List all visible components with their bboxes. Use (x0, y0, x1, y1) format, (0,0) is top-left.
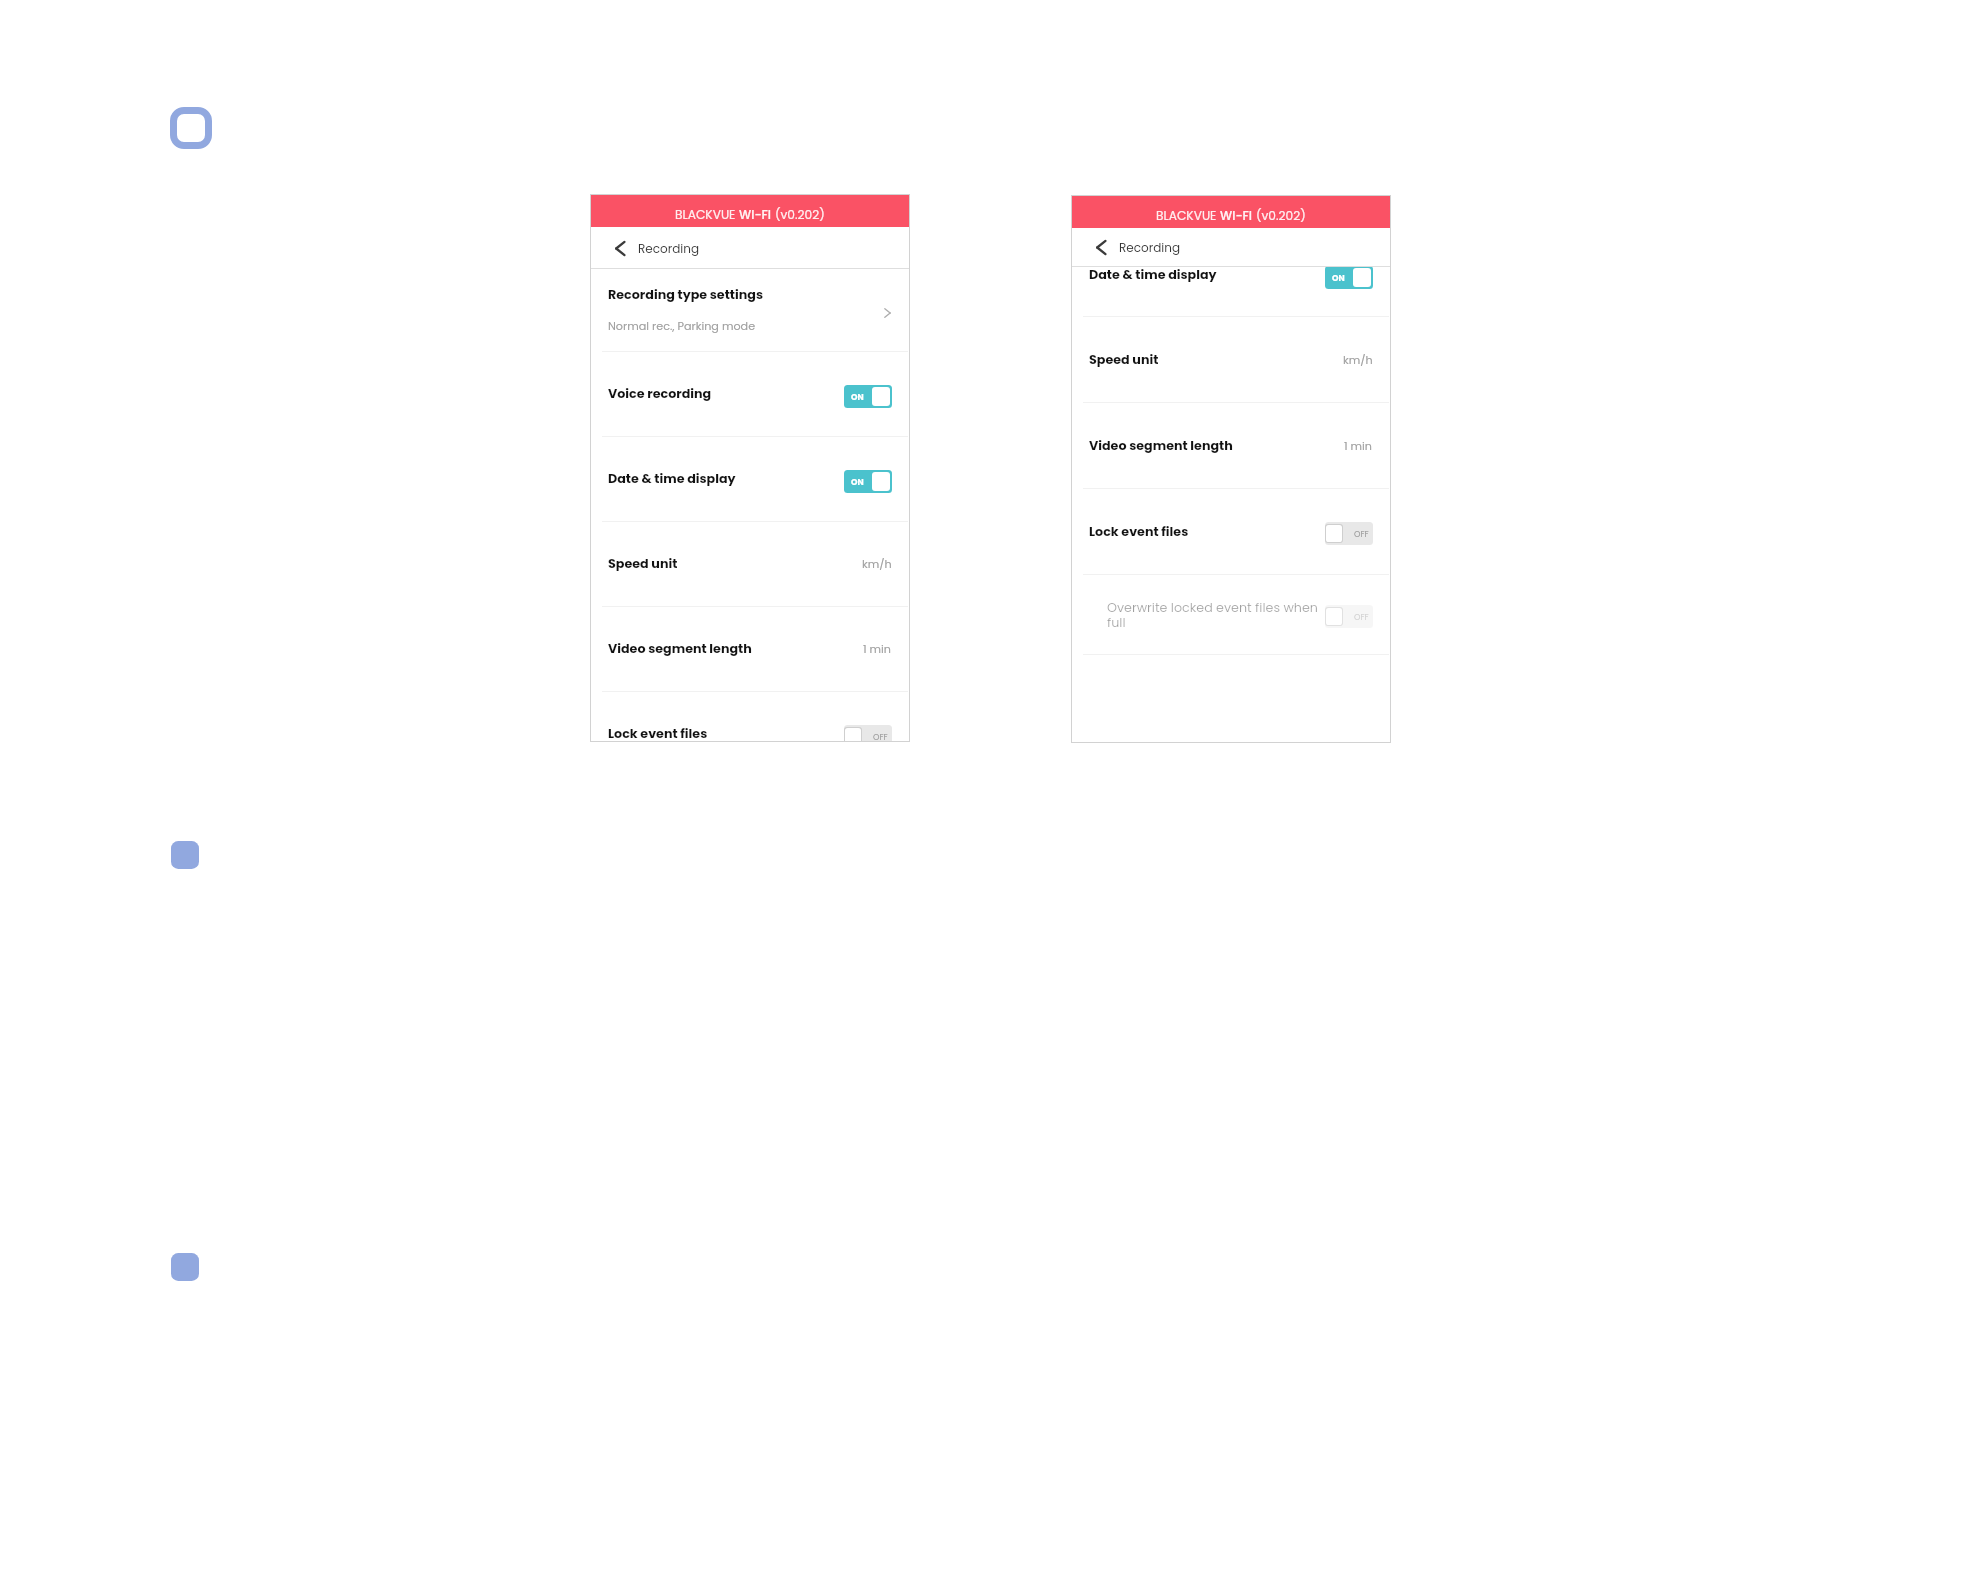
staticText: 1 min (863, 641, 892, 657)
staticText: ON (851, 476, 864, 487)
staticText: km/h (1343, 352, 1373, 368)
staticText: Speed unit (1089, 351, 1159, 369)
staticText: Speed unit (608, 555, 678, 573)
button[interactable]: Lock event files (1072, 489, 1390, 574)
staticText: Video segment length (1089, 437, 1233, 455)
staticText: Recording type settings (608, 286, 763, 304)
staticText: Voice recording (608, 385, 712, 403)
staticText: Video segment length (608, 640, 752, 658)
staticText: Date & time display (608, 470, 736, 488)
staticText: ON (851, 391, 864, 402)
staticText: OFF (873, 731, 888, 741)
button[interactable]: Speed unit (591, 522, 909, 606)
button[interactable]: Video segment length (591, 607, 909, 691)
staticText: OFF (1354, 611, 1369, 622)
button[interactable]: Video segment length (1072, 403, 1390, 488)
button[interactable]: Lock event files (591, 692, 909, 741)
button[interactable]: Back (1072, 228, 1390, 267)
staticText: Overwrite locked event files when full (1107, 599, 1323, 631)
button[interactable]: Back (591, 227, 909, 269)
staticText: 1 min (1344, 438, 1373, 454)
staticText: WI-FI (1220, 207, 1256, 224)
button[interactable]: Date & time display (1072, 267, 1390, 316)
staticText: Lock event files (1089, 523, 1189, 541)
staticText: BLACKVUE (1156, 207, 1220, 224)
button[interactable]: Overwrite locked event files when full (1072, 575, 1390, 654)
staticText: Normal rec., Parking mode (608, 318, 756, 334)
button[interactable]: Switch on (844, 385, 892, 408)
button[interactable]: Recording type settings (591, 269, 909, 351)
button[interactable]: Switch off (1325, 605, 1373, 628)
staticText: Recording (638, 240, 700, 257)
button[interactable]: Switch off (844, 725, 892, 741)
button[interactable]: Switch on (1325, 267, 1373, 289)
staticText: ON (1332, 272, 1345, 283)
staticText: OFF (1354, 528, 1369, 539)
staticText: (v0.202) (775, 206, 825, 223)
staticText: (v0.202) (1256, 207, 1306, 224)
staticText: BLACKVUE (675, 206, 739, 223)
button[interactable]: Speed unit (1072, 317, 1390, 402)
button[interactable]: Date & time display (591, 437, 909, 521)
staticText: Recording (1119, 239, 1181, 256)
staticText: Lock event files (608, 725, 708, 741)
button[interactable]: Switch off (1325, 522, 1373, 545)
staticText: WI-FI (739, 206, 775, 223)
staticText: Date & time display (1089, 267, 1217, 284)
staticText: km/h (862, 556, 892, 572)
button[interactable]: Switch on (844, 470, 892, 493)
button[interactable]: Voice recording (591, 352, 909, 436)
